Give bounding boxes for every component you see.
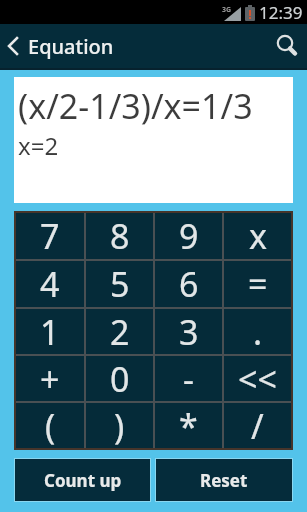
staticText: Count up (44, 469, 122, 492)
button[interactable]: 6 (155, 261, 222, 307)
staticText: 3G (222, 5, 232, 15)
staticText: / (251, 403, 264, 448)
staticText: - (183, 356, 194, 401)
staticText: 8 (110, 213, 130, 259)
button[interactable]: ) (86, 403, 153, 448)
staticText: Equation (28, 33, 114, 60)
staticText: 0 (110, 356, 130, 401)
button[interactable]: << (224, 356, 291, 401)
staticText: 9 (179, 213, 199, 259)
staticText: Reset (200, 469, 248, 492)
button[interactable]: 1 (16, 309, 84, 354)
staticText: 2 (110, 309, 130, 354)
button[interactable]: 0 (86, 356, 153, 401)
button[interactable]: 7 (16, 213, 84, 259)
staticText: x (249, 213, 267, 259)
staticText: ( (45, 403, 56, 448)
button[interactable]: + (16, 356, 84, 401)
button[interactable]: Count up (15, 459, 150, 501)
button[interactable]: 2 (86, 309, 153, 354)
staticText: 12:39 (259, 1, 303, 24)
staticText: 6 (179, 261, 199, 307)
button[interactable]: 3 (155, 309, 222, 354)
button[interactable]: * (155, 403, 222, 448)
staticText: 5 (110, 261, 130, 307)
staticText: * (179, 403, 198, 448)
button[interactable]: . (224, 309, 291, 354)
button[interactable]: x (224, 213, 291, 259)
staticText: + (40, 356, 60, 401)
staticText: ) (114, 403, 125, 448)
button[interactable]: 8 (86, 213, 153, 259)
staticText: << (238, 356, 277, 401)
button[interactable]: / (224, 403, 291, 448)
staticText: 3 (179, 309, 199, 354)
button[interactable]: Equation (0, 24, 307, 68)
staticText: = (248, 261, 268, 307)
button[interactable]: - (155, 356, 222, 401)
staticText: 1 (40, 309, 60, 354)
button[interactable]: = (224, 261, 291, 307)
staticText: (x/2-1/3)/x=1/3 (18, 83, 253, 129)
staticText: x=2 (18, 129, 59, 162)
button[interactable]: 9 (155, 213, 222, 259)
button[interactable]: 4 (16, 261, 84, 307)
button[interactable] (263, 24, 307, 68)
staticText: 7 (40, 213, 60, 259)
button[interactable]: ( (16, 403, 84, 448)
staticText: 4 (40, 261, 60, 307)
staticText: . (253, 309, 263, 354)
button[interactable]: Reset (156, 459, 292, 501)
button[interactable]: 5 (86, 261, 153, 307)
